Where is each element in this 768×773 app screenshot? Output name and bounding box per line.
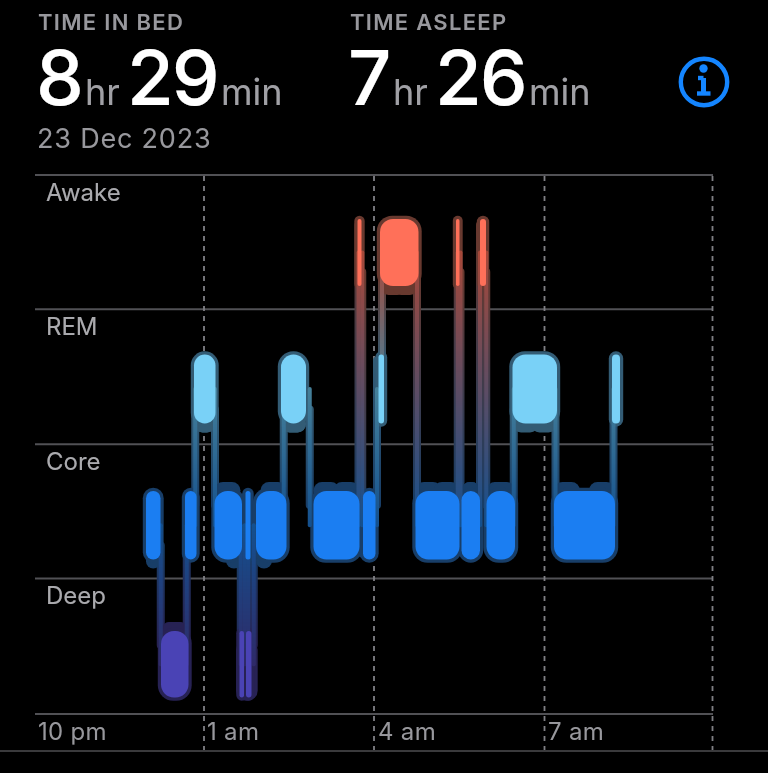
staticText: 7 am [548,717,605,746]
staticText: 29 [127,31,218,123]
staticText: 26 [435,31,526,123]
staticText: Deep [46,581,106,610]
staticText: hr [85,70,120,114]
staticText: 8 [36,31,82,123]
staticText: Awake [46,178,121,207]
staticText: Core [46,447,101,476]
staticText: hr [393,70,428,114]
staticText: TIME ASLEEP [350,9,508,36]
staticText: 10 pm [38,717,107,746]
staticText: 23 Dec 2023 [37,122,212,155]
staticText: 7 [348,31,390,123]
staticText: min [221,70,283,114]
staticText: TIME IN BED [38,9,185,36]
staticText: 1 am [207,717,260,746]
staticText: min [529,70,591,114]
staticText: 4 am [378,717,436,746]
staticText: REM [46,312,98,341]
button[interactable] [678,56,730,108]
